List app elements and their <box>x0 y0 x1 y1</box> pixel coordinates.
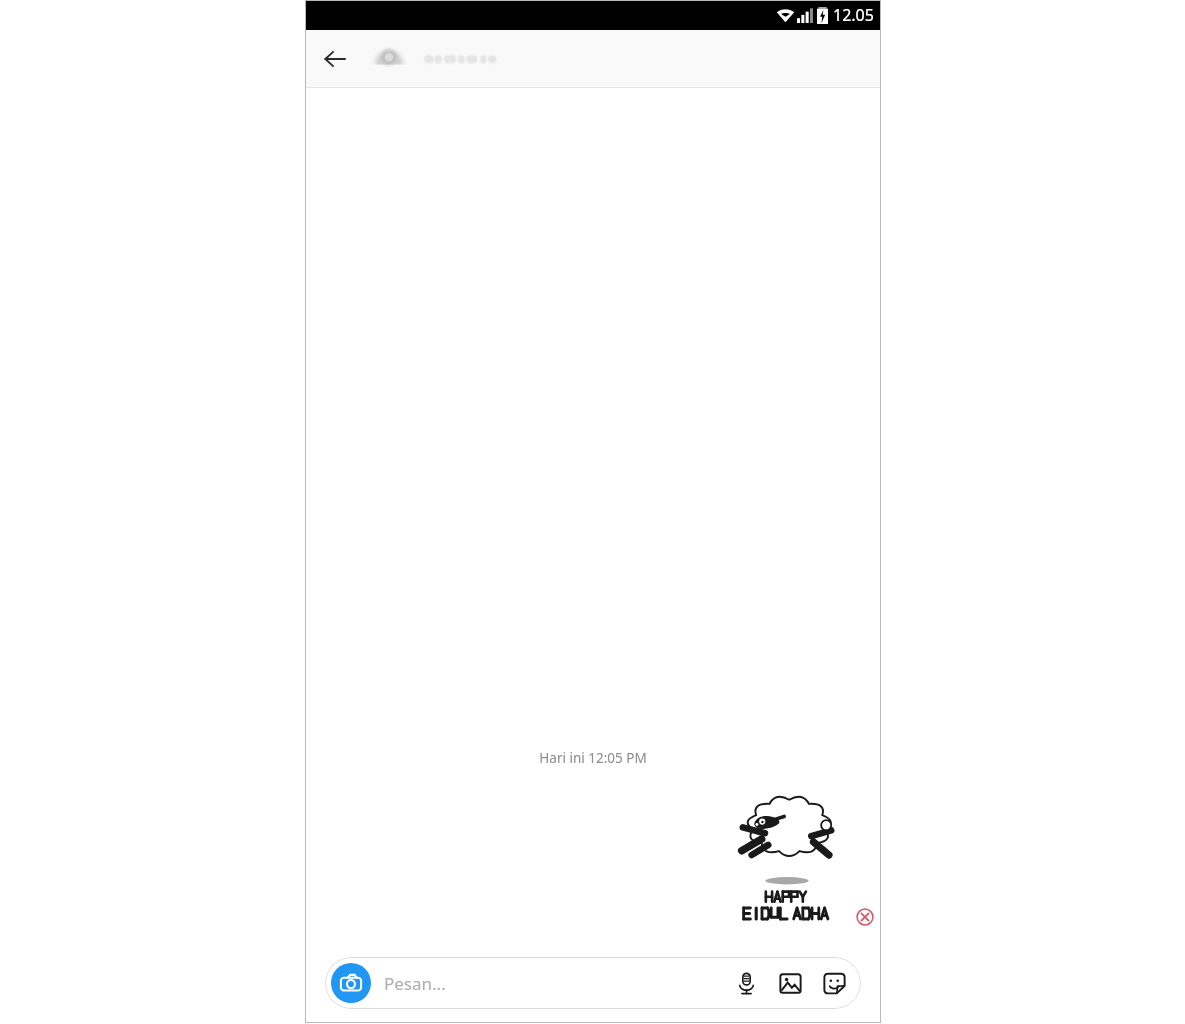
button[interactable]: Kamera <box>331 963 371 1003</box>
staticText: Pesan... <box>384 972 446 995</box>
staticText: 12.05 <box>833 4 874 26</box>
button[interactable]: Rekam suara <box>727 964 765 1002</box>
button[interactable]: Kamera <box>325 957 861 1009</box>
button[interactable]: Stiker <box>815 964 853 1002</box>
button[interactable]: Stiker Happy Eidul Adha <box>727 791 847 931</box>
button[interactable]: Pengiriman gagal <box>855 907 875 927</box>
staticText: Hari ini 12:05 PM <box>305 749 881 767</box>
button[interactable]: Galeri <box>771 964 809 1002</box>
button[interactable]: Kembali <box>313 37 357 81</box>
